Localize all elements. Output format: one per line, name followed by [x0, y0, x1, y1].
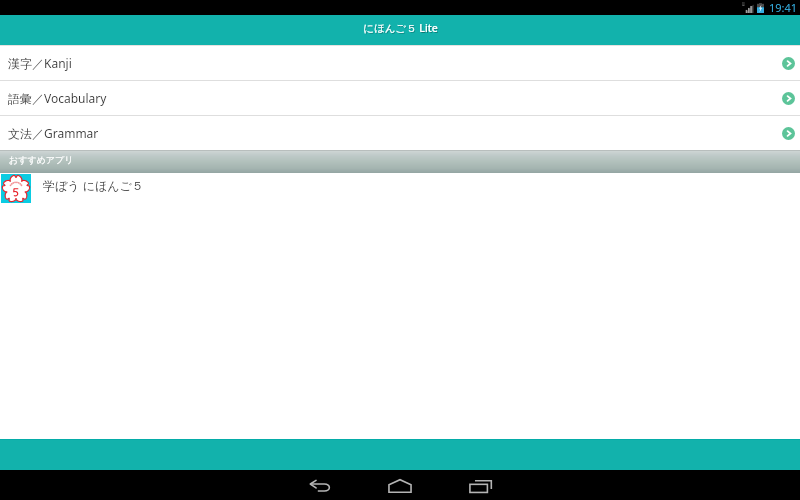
button[interactable]: Home	[360, 470, 440, 500]
button[interactable]: Recent apps	[440, 470, 520, 500]
button[interactable]: 学ぼう にほんご５	[0, 173, 800, 205]
staticText: にほんご５ Lite	[363, 21, 438, 35]
button[interactable]: 文法／Grammar	[0, 115, 800, 150]
staticText: おすすめアプリ	[9, 154, 74, 165]
staticText: 漢字／Kanji	[8, 55, 72, 71]
staticText: 学ぼう にほんご５	[43, 177, 144, 193]
staticText: にほんご５ Lite	[364, 22, 439, 36]
staticText: 19:41	[769, 0, 798, 15]
button[interactable]: 漢字／Kanji	[0, 45, 800, 80]
button[interactable]: Back	[280, 470, 360, 500]
staticText: 文法／Grammar	[8, 125, 99, 141]
button[interactable]: 語彙／Vocabulary	[0, 80, 800, 115]
staticText: 語彙／Vocabulary	[8, 90, 107, 106]
